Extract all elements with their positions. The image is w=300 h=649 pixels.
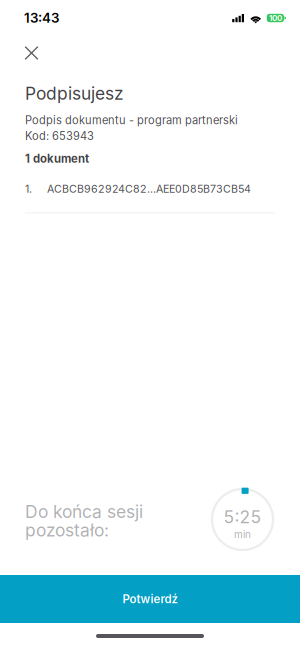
staticText: Potwierdź — [122, 592, 177, 606]
staticText: ACBCB962924C82...AEE0D85B73CB54 — [47, 182, 251, 195]
staticText: Podpis dokumentu - program partnerski — [25, 113, 238, 127]
staticText: 5:25 — [223, 506, 261, 527]
staticText: 1. — [25, 182, 32, 195]
staticText: 100 — [269, 13, 282, 23]
staticText: min — [234, 528, 251, 540]
staticText: 1 dokument — [25, 152, 89, 165]
staticText: pozostało: — [25, 520, 109, 541]
staticText: Kod: 653943 — [25, 129, 94, 143]
staticText: 13:43 — [24, 10, 59, 26]
button[interactable]: Close — [12, 36, 50, 70]
staticText: Do końca sesji — [25, 501, 143, 522]
staticText: Podpisujesz — [25, 83, 124, 104]
button[interactable]: Potwierdź — [0, 575, 300, 623]
